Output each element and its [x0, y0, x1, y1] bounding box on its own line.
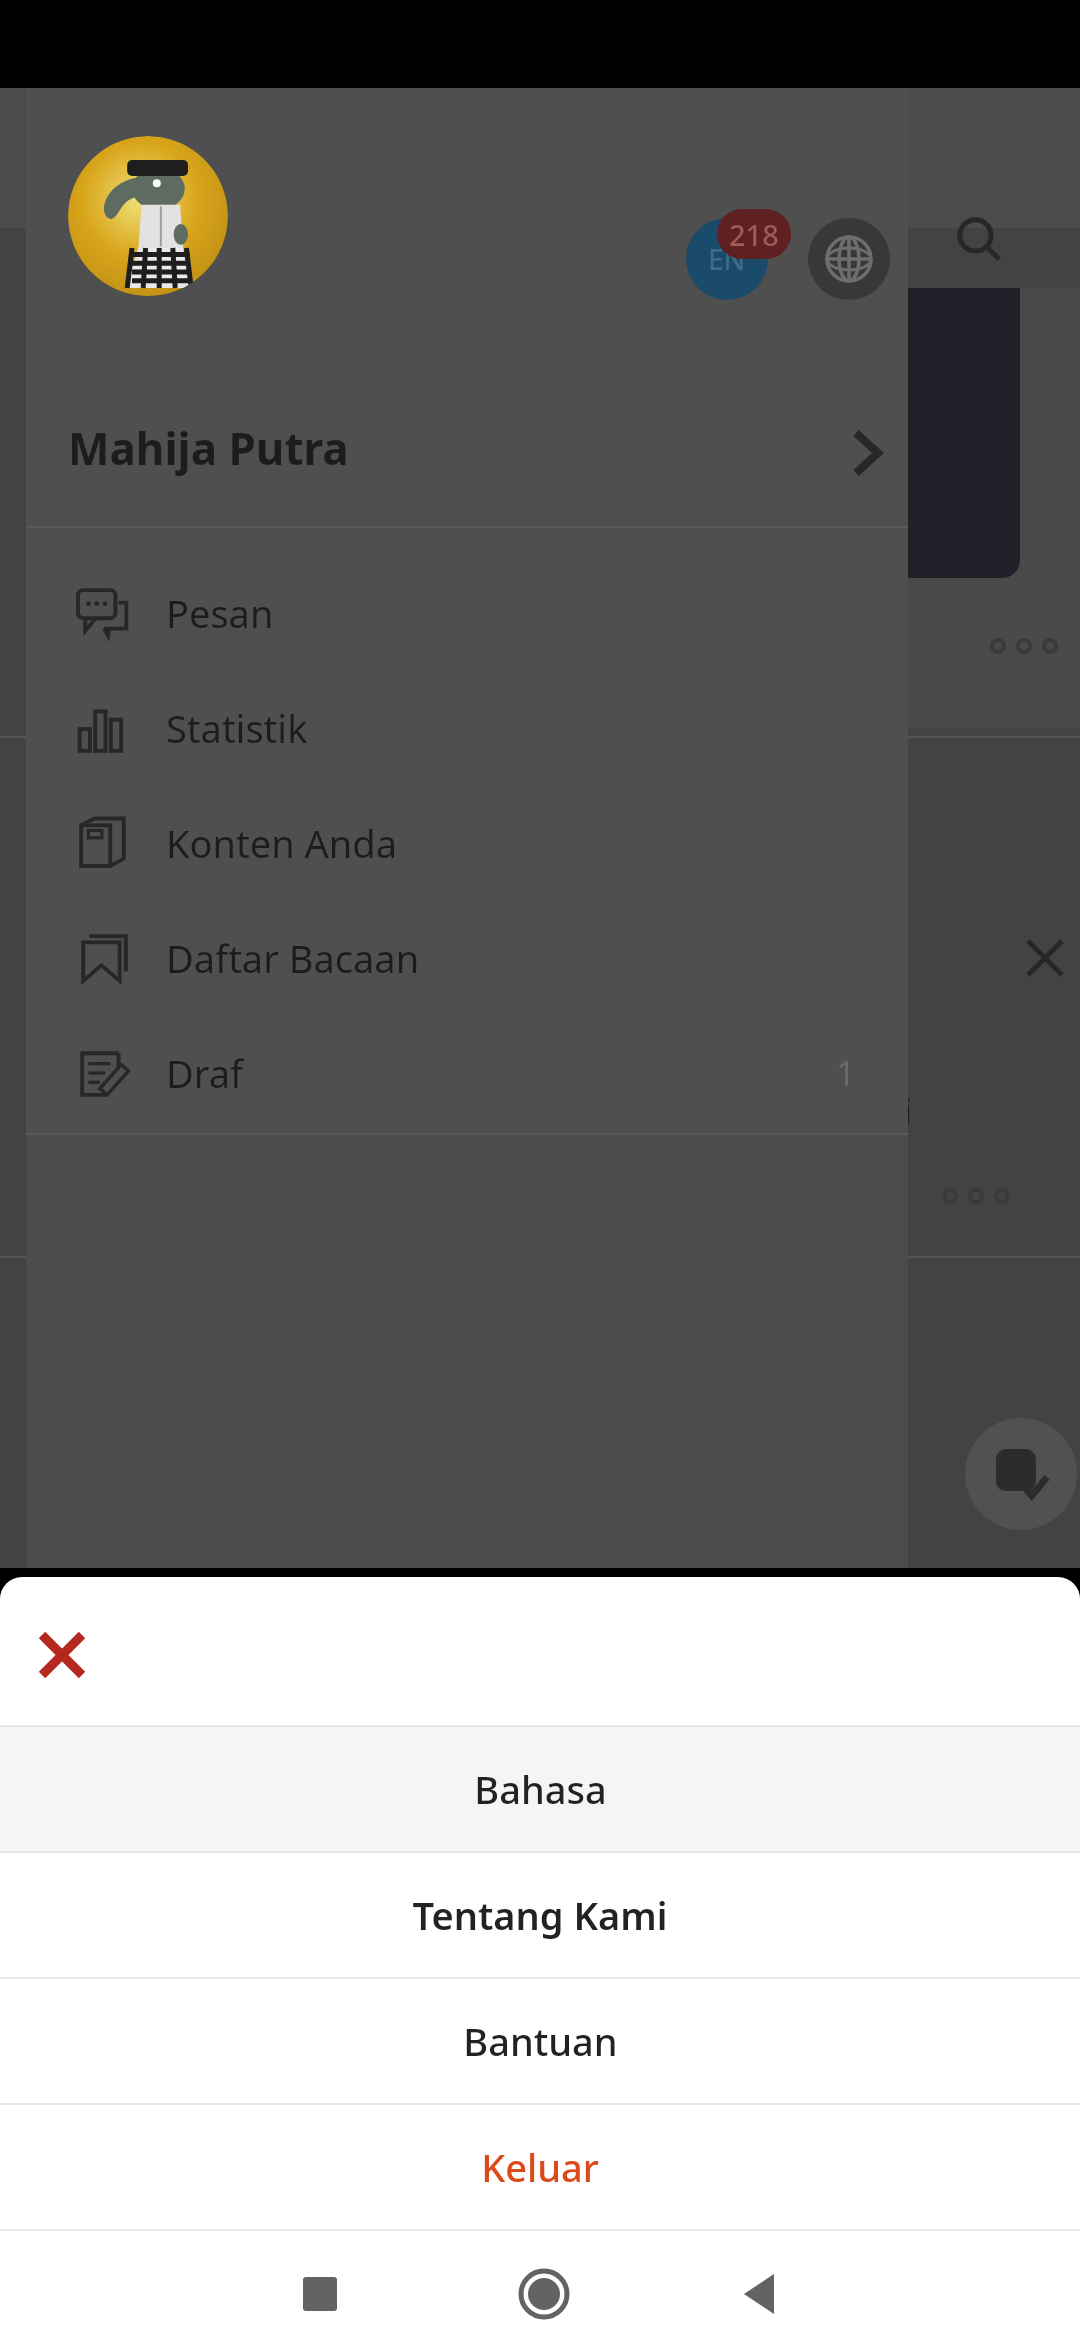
staticText: Daftar Bacaan: [166, 932, 420, 984]
button[interactable]: Tentang Kami: [0, 1853, 1080, 1977]
button[interactable]: Language EN: [686, 218, 768, 300]
button[interactable]: Draf: [26, 1023, 908, 1123]
button[interactable]: Konten Anda: [26, 793, 908, 893]
button[interactable]: Keluar: [0, 2105, 1080, 2229]
staticText: Mahija Putra: [68, 418, 349, 478]
staticText: Bahasa: [474, 1763, 607, 1815]
staticText: Statistik: [166, 702, 308, 754]
button[interactable]: Recents: [285, 2259, 355, 2329]
button[interactable]: Close: [1010, 1443, 1080, 1513]
staticText: pi: [880, 1088, 912, 1134]
staticText: Pesan: [166, 587, 274, 639]
button[interactable]: Bahasa: [0, 1727, 1080, 1851]
staticText: Keluar: [481, 2141, 599, 2193]
button[interactable]: Close: [1010, 923, 1080, 993]
button[interactable]: Add contact: [965, 1418, 1077, 1530]
staticText: 1: [836, 1050, 856, 1096]
button[interactable]: Daftar Bacaan: [26, 908, 908, 1008]
staticText: 218: [729, 215, 779, 254]
button[interactable]: Bantuan: [0, 1979, 1080, 2103]
button[interactable]: Pesan: [26, 563, 908, 663]
staticText: EN: [708, 240, 746, 278]
button[interactable]: Mahija Putra: [26, 388, 908, 526]
button[interactable]: Search: [940, 200, 1020, 280]
button[interactable]: Home: [505, 2255, 583, 2333]
staticText: Draf: [166, 1047, 244, 1099]
button[interactable]: Back: [725, 2259, 795, 2329]
button[interactable]: Globe: [808, 218, 890, 300]
button[interactable]: Profile photo: [68, 136, 228, 296]
staticText: Tentang Kami: [412, 1889, 668, 1941]
button[interactable]: Close: [24, 1617, 100, 1693]
staticText: Konten Anda: [166, 817, 397, 869]
button[interactable]: Statistik: [26, 678, 908, 778]
staticText: Bantuan: [463, 2015, 618, 2067]
